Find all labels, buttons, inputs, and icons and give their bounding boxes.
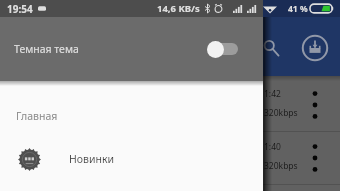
button[interactable]: Downloads xyxy=(300,33,330,63)
button[interactable]: Search xyxy=(255,32,287,64)
button[interactable]: More options xyxy=(303,132,327,184)
staticText: 320kbps xyxy=(264,107,298,119)
button[interactable]: More options xyxy=(303,79,327,131)
button[interactable]: Новинки xyxy=(0,142,263,176)
staticText: 320kbps xyxy=(264,160,298,172)
staticText: 14,6 KB/s xyxy=(157,2,200,15)
staticText: 41 % xyxy=(288,3,308,15)
button[interactable]: 1:42 xyxy=(0,79,340,131)
button[interactable]: 1:40 xyxy=(0,132,340,184)
staticText: Главная xyxy=(16,109,58,123)
staticText: Темная тема xyxy=(14,42,79,56)
staticText: 1:40 xyxy=(264,141,281,153)
button[interactable]: Dark theme toggle xyxy=(206,40,238,58)
staticText: 1:42 xyxy=(264,88,281,100)
staticText: Новинки xyxy=(69,152,115,166)
staticText: 19:54 xyxy=(7,2,33,16)
